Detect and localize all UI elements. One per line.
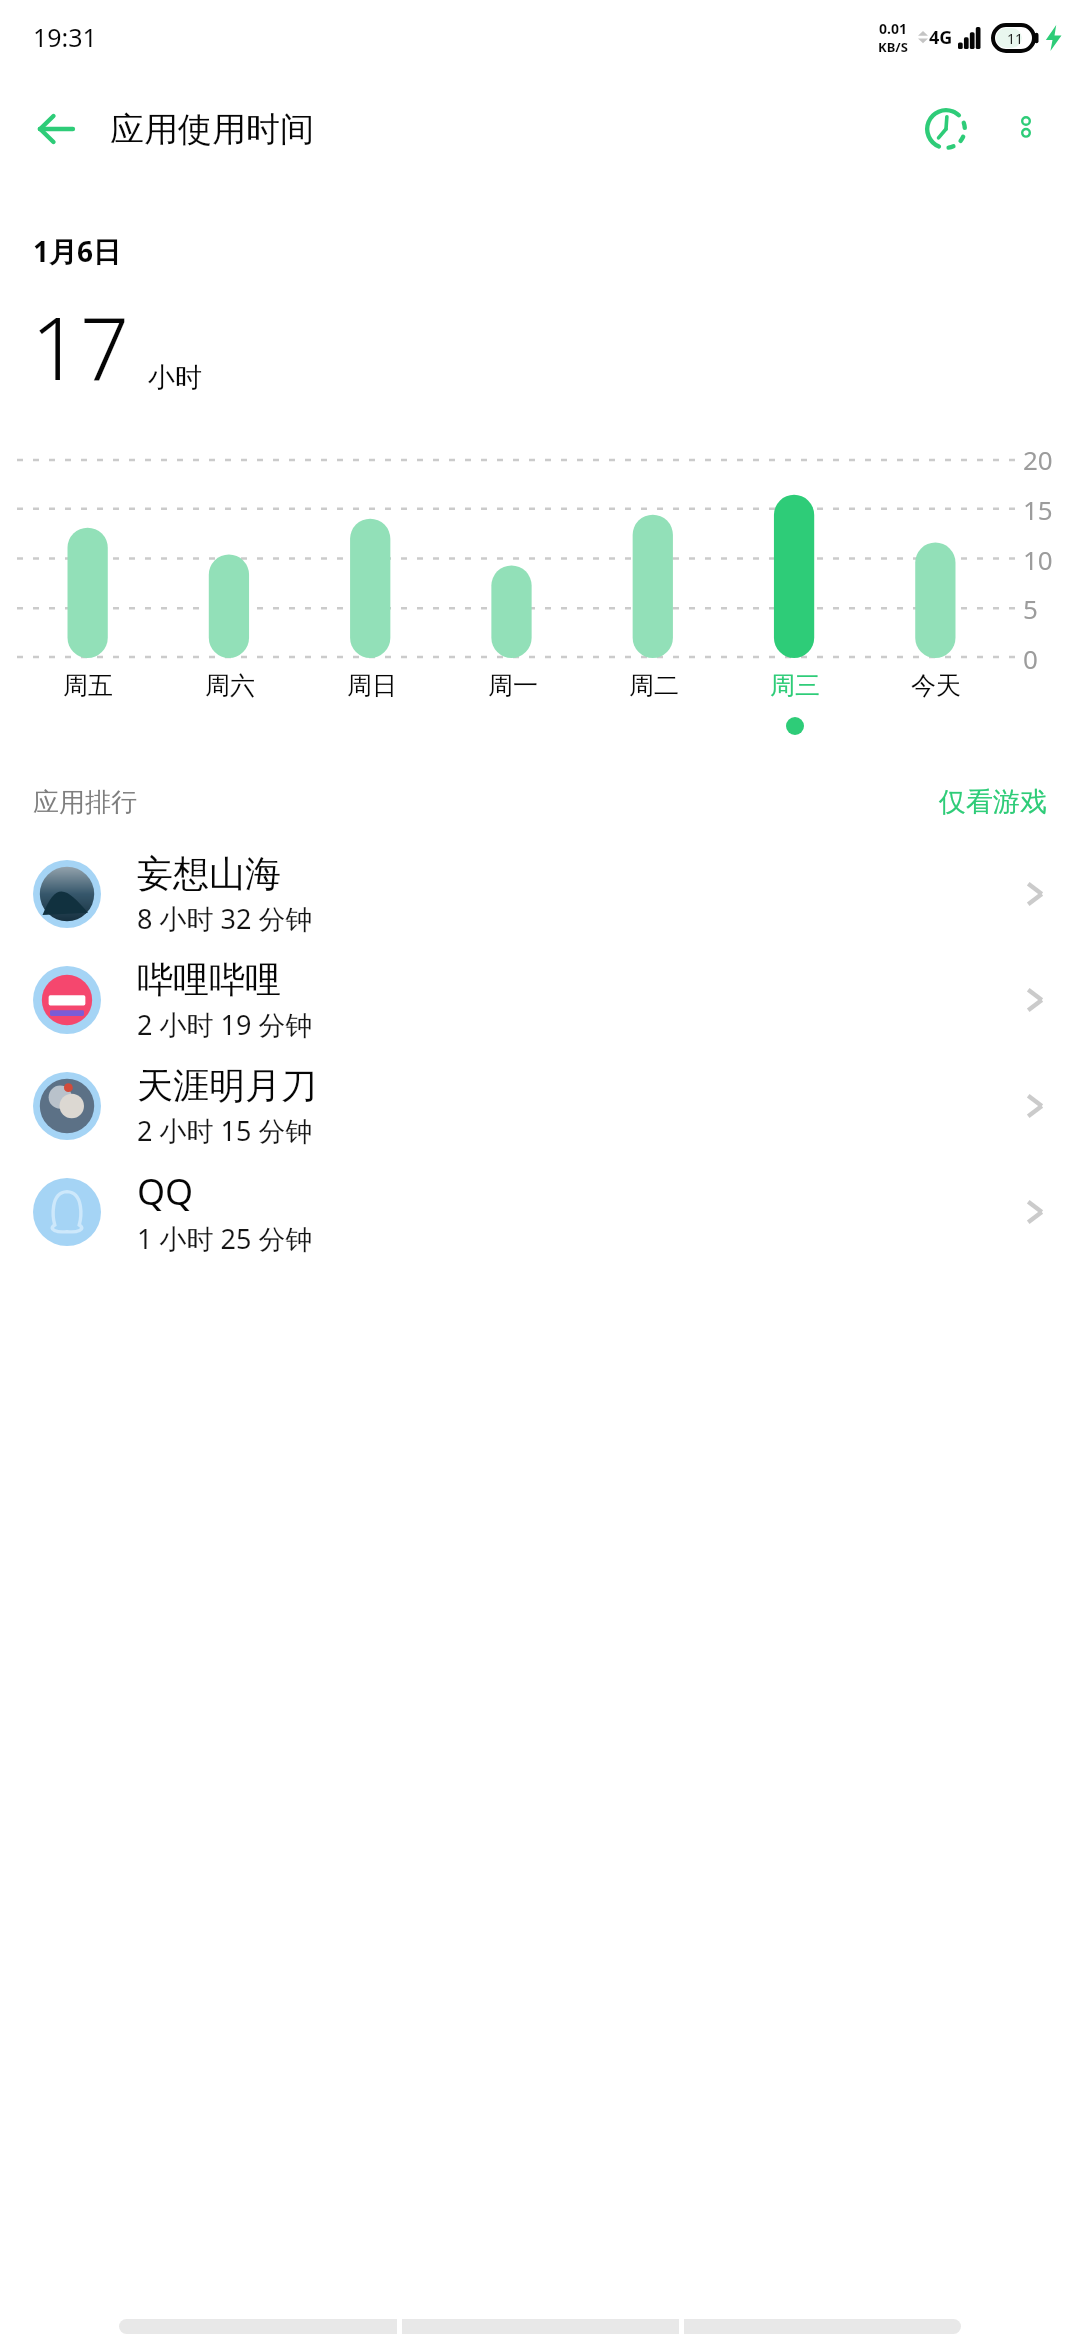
staticText: 周日 <box>347 670 397 701</box>
other: Open 哔哩哔哩 details <box>1018 983 1052 1017</box>
staticText: 20 <box>1023 442 1053 477</box>
other: Open 天涯明月刀 details <box>1018 1089 1052 1123</box>
staticText: 2 小时 15 分钟 <box>137 1112 313 1149</box>
staticText: 15 <box>1023 492 1053 527</box>
staticText: 妄想山海 <box>137 851 281 896</box>
staticText: 19:31 <box>33 20 97 54</box>
staticText: 周五 <box>63 670 113 701</box>
staticText: 周三 <box>770 670 820 701</box>
staticText: 10 <box>1023 542 1053 577</box>
staticText: 小时 <box>148 361 202 395</box>
button[interactable]: More options <box>986 89 1066 169</box>
staticText: 今天 <box>911 670 961 701</box>
staticText: 1月6日 <box>33 232 122 270</box>
staticText: 8 小时 32 分钟 <box>137 900 313 937</box>
staticText: 17 <box>31 288 130 405</box>
other: Open QQ details <box>1018 1195 1052 1229</box>
staticText: 天涯明月刀 <box>137 1063 317 1108</box>
staticText: 1 小时 25 分钟 <box>137 1220 313 1257</box>
button[interactable]: Usage timer <box>906 89 986 169</box>
staticText: 仅看游戏 <box>939 785 1047 819</box>
button[interactable]: 仅看游戏 <box>933 777 1053 827</box>
button[interactable]: QQ <box>0 1159 1080 1265</box>
staticText: 应用使用时间 <box>110 108 314 151</box>
button[interactable]: 哔哩哔哩 <box>0 947 1080 1053</box>
staticText: 4G <box>929 25 953 50</box>
staticText: 周一 <box>488 670 538 701</box>
staticText: 11 <box>1007 29 1024 48</box>
staticText: 5 <box>1023 591 1038 626</box>
staticText: QQ <box>137 1167 194 1216</box>
staticText: 2 小时 19 分钟 <box>137 1006 313 1043</box>
staticText: 应用排行 <box>33 786 137 819</box>
other: Open 妄想山海 details <box>1018 877 1052 911</box>
button[interactable]: 天涯明月刀 <box>0 1053 1080 1159</box>
button[interactable]: 妄想山海 <box>0 841 1080 947</box>
staticText: 哔哩哔哩 <box>137 957 281 1002</box>
staticText: KB/S <box>878 38 908 56</box>
staticText: 0.01 <box>879 19 907 38</box>
staticText: 0 <box>1023 641 1038 676</box>
staticText: 周六 <box>205 670 255 701</box>
staticText: 周二 <box>629 670 679 701</box>
button[interactable]: Back <box>20 93 92 165</box>
